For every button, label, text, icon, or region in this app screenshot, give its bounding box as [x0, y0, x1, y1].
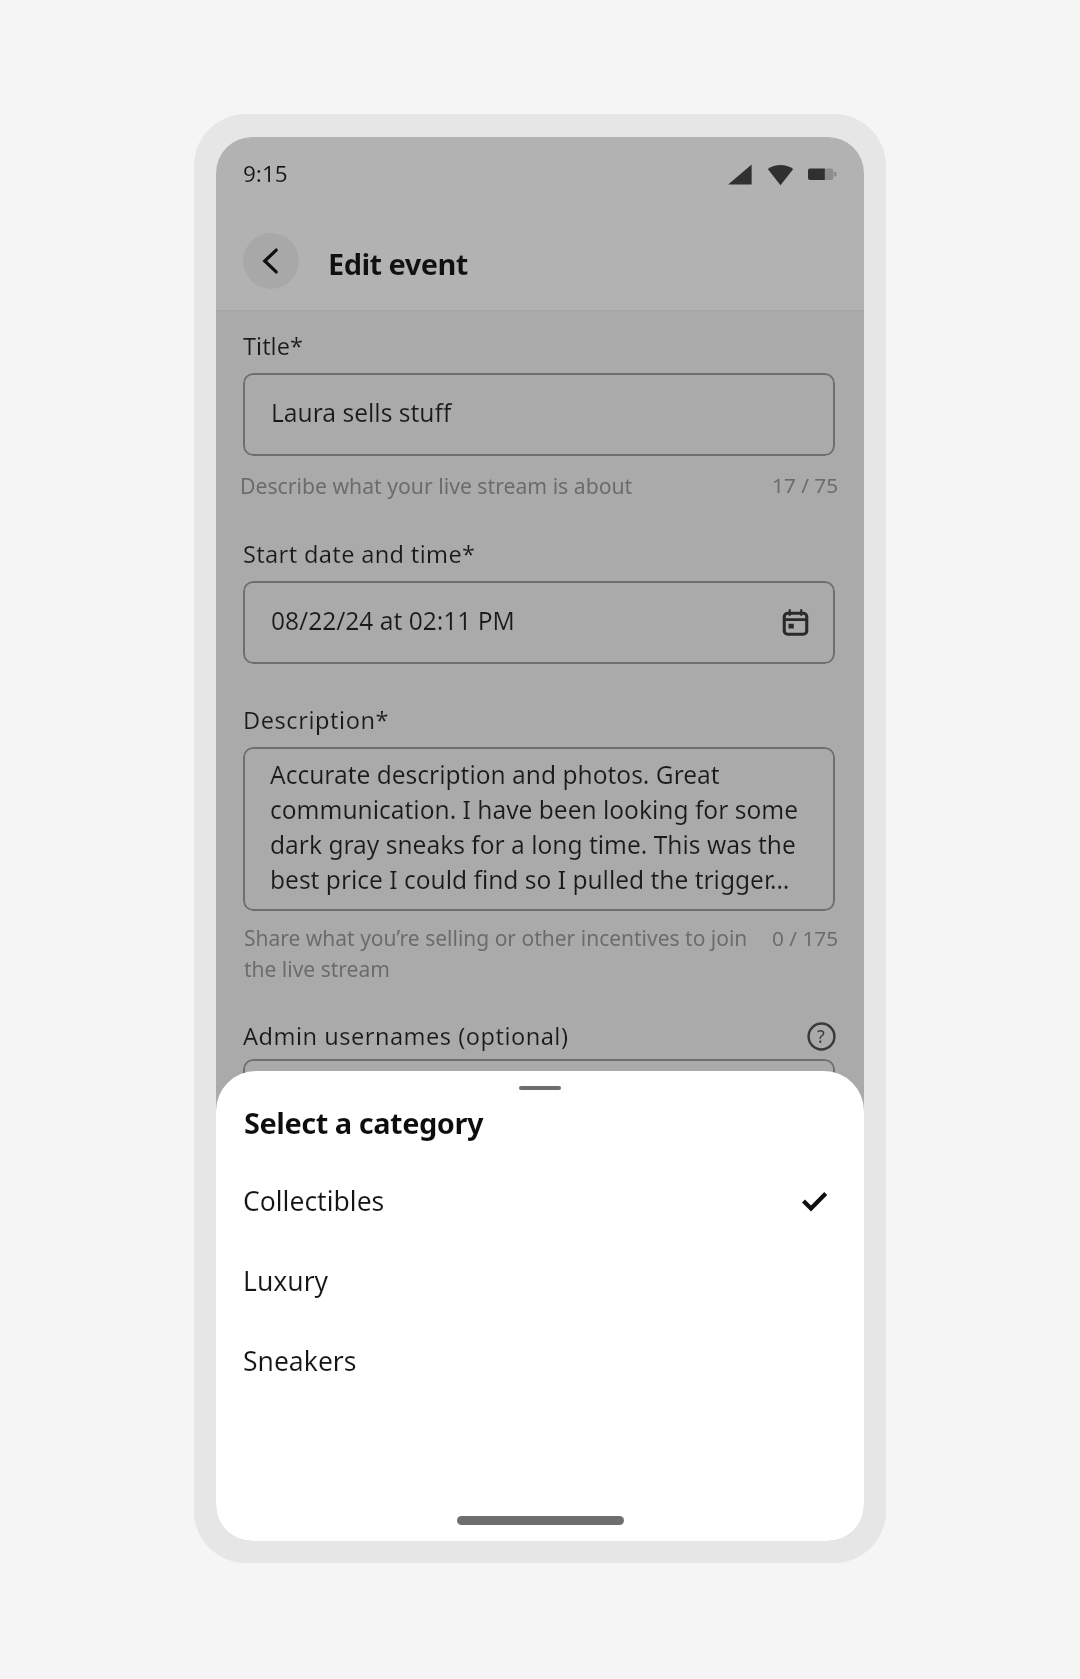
button[interactable]: Start date and time — [243, 581, 835, 664]
staticText: Luxury — [243, 1263, 828, 1299]
staticText: 08/22/24 at 02:11 PM — [271, 604, 787, 637]
button[interactable]: Back — [243, 233, 299, 289]
staticText: Laura sells stuff — [271, 396, 452, 429]
staticText: 9:15 — [243, 158, 288, 189]
staticText: Admin usernames (optional) — [243, 1020, 801, 1052]
staticText: ? — [817, 1024, 825, 1048]
staticText: 0 / 175 — [772, 924, 839, 952]
button[interactable]: Admin usernames — [243, 1059, 835, 1142]
staticText: Collectibles — [243, 1183, 803, 1219]
staticText: Accurate description and photos. Great c… — [270, 758, 825, 896]
button[interactable]: Title — [243, 373, 835, 456]
button[interactable]: Sneakers — [216, 1321, 864, 1401]
staticText: Describe what your live stream is about — [240, 471, 633, 500]
button[interactable]: Luxury — [216, 1241, 864, 1321]
button[interactable]: Description — [243, 747, 835, 911]
staticText: Select a category — [244, 1103, 483, 1142]
button[interactable]: Pick date and time — [783, 610, 808, 635]
staticText: Description* — [243, 704, 390, 736]
staticText: 17 / 75 — [772, 471, 839, 499]
button[interactable]: Drag handle — [519, 1086, 561, 1090]
staticText: Share what you’re selling or other incen… — [244, 924, 768, 983]
button[interactable]: Help — [804, 1019, 838, 1053]
staticText: Start date and time* — [243, 538, 476, 570]
button[interactable]: Collectibles — [216, 1161, 864, 1241]
staticText: Sneakers — [243, 1343, 828, 1379]
staticText: Title* — [243, 330, 303, 362]
staticText: Edit event — [328, 244, 468, 283]
